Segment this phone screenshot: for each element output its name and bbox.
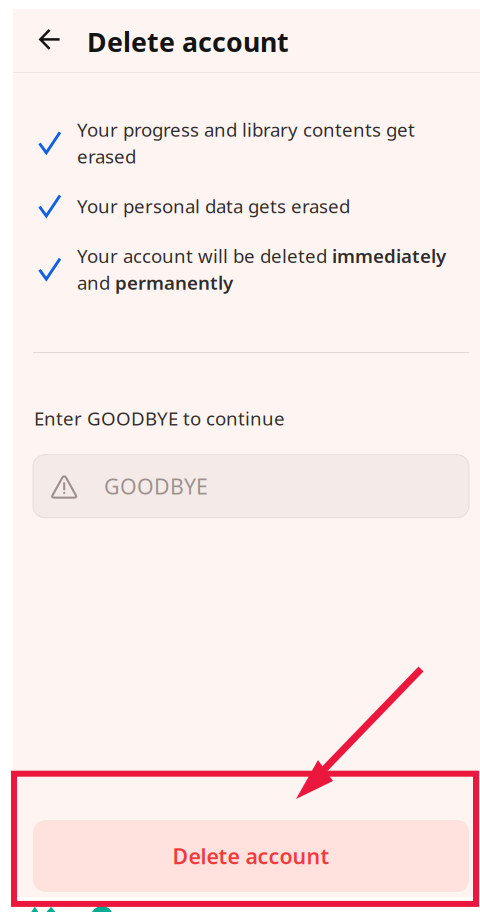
staticText: Delete account [172,842,329,870]
button[interactable]: Back [13,9,83,72]
button[interactable]: Delete account [33,820,469,892]
staticText: Enter GOODBYE to continue [34,406,285,431]
staticText: Your account will be deleted immediately… [77,243,446,295]
staticText: Your progress and library contents get e… [77,117,415,169]
staticText: GOODBYE [104,472,208,500]
staticText: Delete account [87,24,289,59]
staticText: Your personal data gets erased [77,194,350,218]
